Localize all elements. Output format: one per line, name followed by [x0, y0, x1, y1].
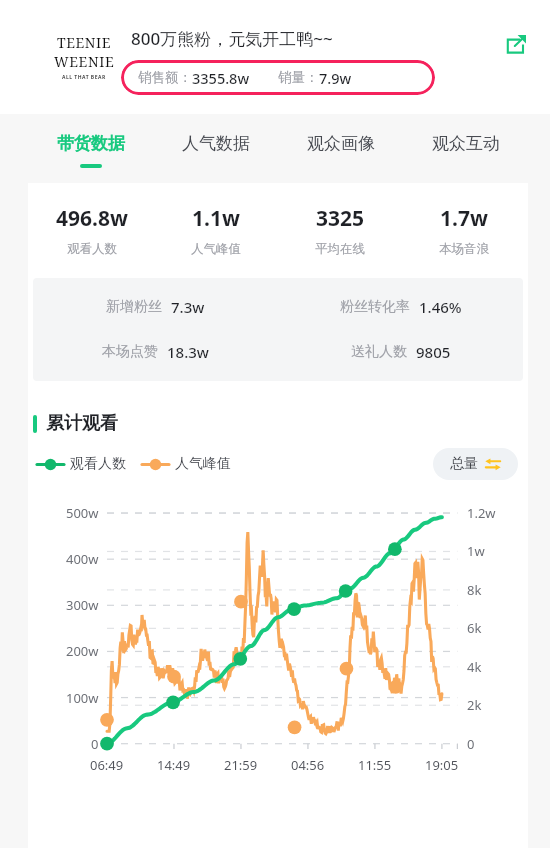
staticText: 人气峰值 — [175, 455, 231, 473]
staticText: 500w — [66, 504, 99, 522]
staticText: 7.3w — [171, 297, 205, 317]
staticText: 销量： — [278, 69, 319, 86]
staticText: 1w — [467, 542, 485, 560]
staticText: 06:49 — [90, 756, 124, 774]
staticText: 0 — [91, 735, 99, 753]
button[interactable]: 观看人数 — [37, 455, 126, 473]
staticText: 观众画像 — [307, 133, 375, 154]
staticText: 新增粉丝 — [106, 298, 162, 316]
staticText: 496.8w — [56, 204, 128, 233]
button[interactable]: 送礼人数 — [278, 342, 523, 362]
button[interactable]: 本场点赞 — [33, 342, 278, 362]
staticText: 1.1w — [192, 204, 240, 233]
staticText: 04:56 — [291, 756, 325, 774]
button[interactable]: 人气峰值 — [142, 455, 231, 473]
staticText: 9805 — [416, 342, 451, 362]
staticText: 200w — [66, 642, 99, 660]
staticText: 累计观看 — [46, 412, 118, 435]
staticText: 300w — [66, 596, 99, 614]
button[interactable]: 带货数据 — [28, 114, 153, 183]
button[interactable]: 观众画像 — [278, 114, 403, 183]
staticText: 14:49 — [157, 756, 191, 774]
button[interactable]: Share — [498, 26, 534, 62]
staticText: 本场点赞 — [102, 343, 158, 361]
staticText: 平均在线 — [315, 241, 365, 257]
staticText: 800万熊粉，元気开工鸭~~ — [131, 27, 333, 50]
staticText: 总量 — [450, 455, 478, 473]
staticText: 观众互动 — [432, 133, 500, 154]
staticText: 6k — [467, 619, 482, 637]
button[interactable]: 人气数据 — [153, 114, 278, 183]
staticText: 送礼人数 — [351, 343, 407, 361]
staticText: 3355.8w — [192, 68, 250, 88]
staticText: 0 — [467, 735, 475, 753]
staticText: TEENIE — [57, 33, 112, 52]
staticText: 观看人数 — [67, 241, 117, 257]
button[interactable]: 新增粉丝 — [33, 297, 278, 317]
button[interactable]: 粉丝转化率 — [278, 297, 523, 317]
staticText: 带货数据 — [57, 133, 125, 154]
staticText: 19:05 — [425, 756, 459, 774]
button[interactable]: 3325 — [278, 204, 402, 257]
staticText: 本场音浪 — [439, 241, 489, 257]
staticText: WEENIE — [54, 52, 115, 71]
staticText: 8k — [467, 581, 482, 599]
button[interactable]: 销售额： — [121, 60, 435, 95]
button[interactable]: 496.8w — [30, 204, 154, 257]
staticText: 人气峰值 — [191, 241, 241, 257]
staticText: ALL THAT BEAR — [62, 74, 106, 81]
button[interactable]: 总量 — [433, 448, 518, 480]
staticText: 4k — [467, 658, 482, 676]
staticText: 2k — [467, 696, 482, 714]
staticText: 7.9w — [319, 68, 352, 88]
staticText: 3325 — [316, 204, 365, 233]
staticText: 21:59 — [224, 756, 258, 774]
staticText: 1.2w — [467, 504, 496, 522]
staticText: 100w — [66, 689, 99, 707]
staticText: 人气数据 — [182, 133, 250, 154]
button[interactable]: 观众互动 — [403, 114, 528, 183]
staticText: 18.3w — [167, 342, 209, 362]
button[interactable]: 1.1w — [154, 204, 278, 257]
staticText: 11:55 — [358, 756, 392, 774]
staticText: 1.46% — [419, 297, 462, 317]
staticText: 1.7w — [440, 204, 488, 233]
staticText: 观看人数 — [70, 455, 126, 473]
button[interactable]: 1.7w — [402, 204, 526, 257]
staticText: 粉丝转化率 — [340, 298, 410, 316]
staticText: 销售额： — [138, 69, 192, 86]
staticText: 400w — [66, 550, 99, 568]
